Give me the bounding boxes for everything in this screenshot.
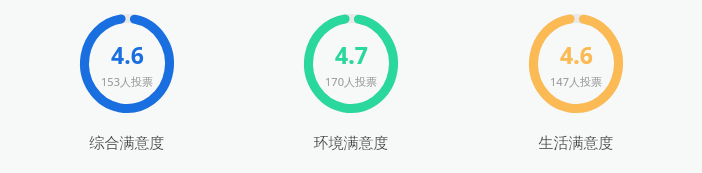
- staticText: 综合满意度: [29, 134, 225, 153]
- staticText: 环境满意度: [253, 134, 449, 153]
- staticText: 147人投票: [550, 74, 602, 89]
- button[interactable]: 综合满意度: [29, 0, 225, 153]
- other: 综合满意度: [80, 14, 174, 113]
- other: 生活满意度: [529, 14, 623, 113]
- staticText: 170人投票: [325, 74, 377, 89]
- staticText: 4.6: [111, 39, 144, 70]
- other: 环境满意度: [304, 14, 398, 113]
- staticText: 4.6: [560, 39, 593, 70]
- staticText: 4.7: [335, 39, 368, 70]
- button[interactable]: 环境满意度: [253, 0, 449, 153]
- staticText: 153人投票: [101, 74, 153, 89]
- button[interactable]: 生活满意度: [478, 0, 674, 153]
- staticText: 生活满意度: [478, 134, 674, 153]
